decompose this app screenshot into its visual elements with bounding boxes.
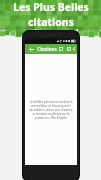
staticText: Citations xyxy=(37,46,57,52)
button[interactable]: Copy xyxy=(57,45,65,53)
button[interactable]: «L'athlète personne tendent à un meilleu… xyxy=(25,54,77,165)
staticText: «L'athlète personne tendent à un meilleu… xyxy=(29,100,73,120)
button[interactable]: Save xyxy=(65,45,73,53)
staticText: citations xyxy=(28,15,74,29)
staticText: Les Plus Belles xyxy=(13,0,89,14)
button[interactable]: Back xyxy=(27,45,35,53)
button[interactable]: Share xyxy=(73,45,75,53)
